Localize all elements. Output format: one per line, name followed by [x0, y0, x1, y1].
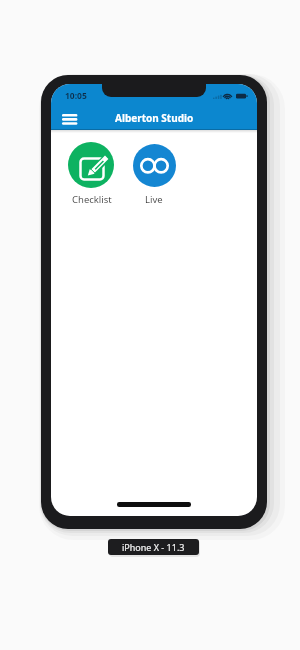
staticText: Checklist: [72, 193, 112, 206]
button[interactable]: [133, 144, 176, 187]
button[interactable]: [68, 142, 114, 188]
staticText: Alberton Studio: [115, 111, 194, 125]
staticText: iPhone X - 11.3: [122, 541, 185, 553]
staticText: Live: [145, 193, 163, 206]
button[interactable]: [57, 109, 83, 130]
staticText: 10:05: [65, 90, 87, 102]
